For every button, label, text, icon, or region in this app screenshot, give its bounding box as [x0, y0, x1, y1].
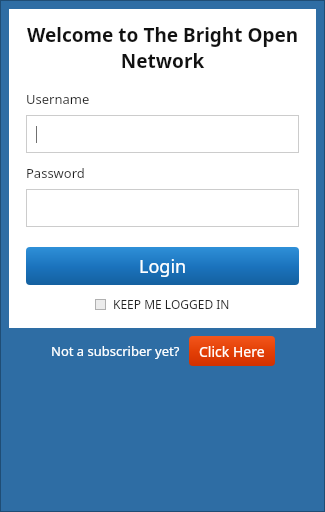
staticText: Password	[26, 164, 85, 182]
button[interactable]	[26, 115, 299, 153]
button[interactable]: KEEP ME LOGGED IN	[26, 296, 299, 312]
button[interactable]: Login	[26, 247, 299, 285]
staticText: Click Here	[199, 342, 265, 361]
staticText: Not a subscriber yet?	[51, 342, 180, 360]
staticText: Welcome to The Bright Open Network	[26, 22, 299, 73]
button[interactable]	[26, 189, 299, 227]
staticText: KEEP ME LOGGED IN	[113, 296, 230, 312]
staticText: Login	[139, 254, 187, 279]
button[interactable]: Click Here	[189, 336, 275, 366]
staticText: Username	[26, 90, 90, 108]
